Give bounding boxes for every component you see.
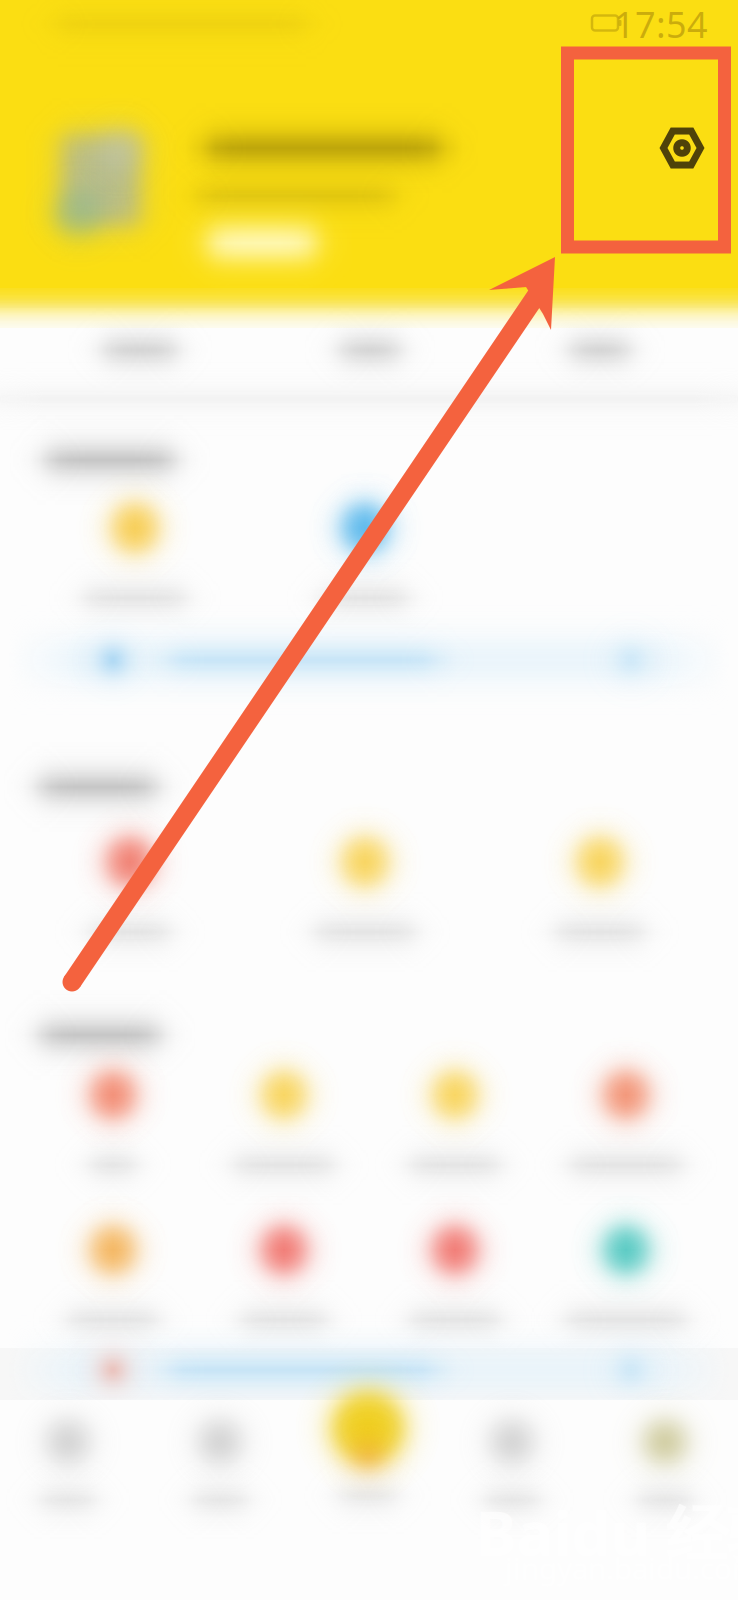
button[interactable]: Tab [605,1402,725,1542]
button[interactable]: Shortcut [40,816,220,978]
button[interactable]: Shortcut [23,1049,203,1211]
button[interactable]: Shortcut [365,1204,545,1366]
staticText: 17:54 [614,0,708,48]
button[interactable]: Tab [160,1402,280,1542]
button[interactable]: Notice [35,1336,703,1404]
button[interactable]: Tab [8,1402,128,1542]
button[interactable]: Tab [452,1402,572,1542]
button[interactable]: Tab [278,309,462,391]
staticText: Baidu 经验 [475,1491,738,1573]
button[interactable]: Tab [508,309,692,391]
button[interactable]: Shortcut [23,1204,203,1366]
button[interactable]: Shortcut [275,816,455,978]
button[interactable]: Shortcut [536,1049,716,1211]
button[interactable]: Shortcut [365,1049,545,1211]
button[interactable]: Shortcut [510,816,690,978]
button[interactable]: Notice [35,626,703,694]
button[interactable]: Shortcut [45,482,225,644]
button[interactable]: Shortcut [536,1204,716,1366]
button[interactable]: Create [288,1368,448,1528]
button[interactable]: Shortcut [275,482,455,644]
button[interactable]: Tab [48,309,232,391]
button[interactable]: Settings [647,113,717,183]
button[interactable]: Shortcut [194,1204,374,1366]
button[interactable]: Shortcut [194,1049,374,1211]
